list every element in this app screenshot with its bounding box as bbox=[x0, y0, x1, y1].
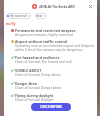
button[interactable]: Flying during daylight bbox=[4, 93, 97, 102]
staticText: Flying during daylight bbox=[15, 93, 54, 98]
staticText: Chain of Survival Danger Areas bbox=[15, 86, 62, 90]
button[interactable]: Permanent and restricted airspace bbox=[4, 28, 97, 37]
staticText: Recreational bbox=[10, 14, 27, 18]
staticText: 4EHB-All The Burke ARN bbox=[39, 5, 75, 9]
staticText: Airspace permissions, highly restricted bbox=[15, 33, 73, 37]
staticText: Permanent and restricted airspace bbox=[15, 28, 76, 33]
button[interactable]: VISIBLE ABOUT bbox=[4, 68, 97, 77]
staticText: VISIBLE ABOUT bbox=[15, 68, 42, 73]
staticText: Chain of Survival Daylight bbox=[15, 98, 54, 102]
staticText: Now bbox=[36, 14, 43, 18]
staticText: no fly bbox=[6, 21, 16, 26]
button[interactable]: CHECK BEFORE bbox=[31, 103, 71, 111]
button[interactable]: Recreational bbox=[6, 13, 31, 19]
button[interactable]: Close bbox=[86, 2, 95, 11]
staticText: Airport without traffic control bbox=[15, 39, 68, 44]
staticText: CHECK BEFORE bbox=[40, 105, 62, 109]
staticText: Operating near an uncontrolled airport a… bbox=[15, 44, 95, 52]
staticText: Chain of Survival Design Areas bbox=[15, 73, 61, 77]
button[interactable]: Danger Area bbox=[4, 81, 97, 90]
button[interactable]: Airport without traffic control bbox=[4, 39, 97, 52]
button[interactable]: Now bbox=[35, 13, 47, 19]
staticText: Chain of Survival: Fire hazard and resil bbox=[15, 60, 72, 64]
staticText: Fire hazard and resilience bbox=[15, 55, 60, 60]
staticText: Danger Area bbox=[15, 81, 37, 86]
button[interactable]: Fire hazard and resilience bbox=[4, 55, 97, 64]
